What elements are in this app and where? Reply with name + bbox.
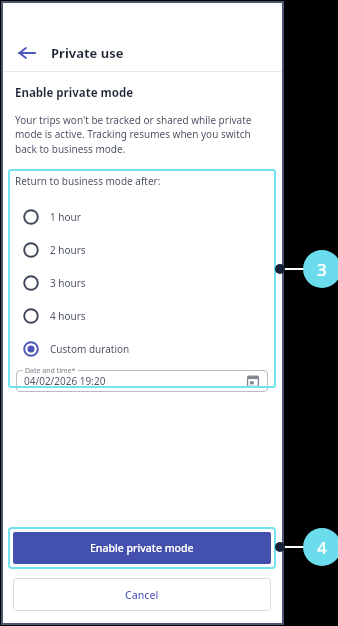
button[interactable]: Back <box>14 40 40 66</box>
staticText: Return to business mode after: <box>15 174 161 188</box>
button[interactable]: 3 hours <box>15 266 269 299</box>
button[interactable]: Enable private mode <box>13 532 271 564</box>
staticText: Cancel <box>125 588 159 602</box>
button[interactable]: Custom duration <box>15 332 269 365</box>
staticText: Date and time* <box>25 366 76 376</box>
staticText: 3 hours <box>50 276 86 290</box>
staticText: 4 <box>317 536 327 559</box>
button[interactable]: 2 hours <box>15 233 269 266</box>
button[interactable]: 1 hour <box>15 200 269 233</box>
staticText: Enable private mode <box>15 85 134 101</box>
staticText: 04/02/2026 19:20 <box>24 374 106 388</box>
staticText: 2 hours <box>50 243 86 257</box>
staticText: 1 hour <box>50 210 81 224</box>
staticText: Private use <box>51 44 124 62</box>
button[interactable]: Cancel <box>13 578 271 611</box>
staticText: 4 hours <box>50 309 86 323</box>
button[interactable]: 4 hours <box>15 299 269 332</box>
button[interactable]: Pick date and time <box>243 371 263 391</box>
staticText: Custom duration <box>50 342 130 356</box>
staticText: 3 <box>317 258 327 281</box>
staticText: Enable private mode <box>90 541 194 555</box>
staticText: Your trips won't be tracked or shared wh… <box>15 113 270 156</box>
